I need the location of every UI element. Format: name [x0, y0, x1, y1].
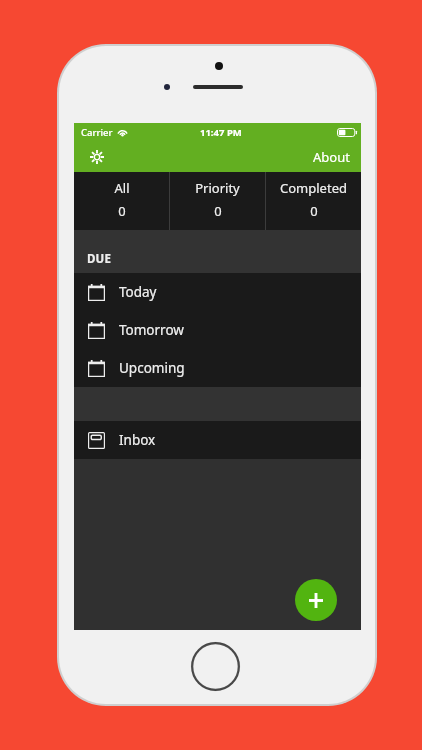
staticText: Priority — [195, 179, 240, 197]
button[interactable]: Priority — [170, 172, 265, 230]
button[interactable]: Inbox — [74, 421, 361, 459]
button[interactable]: Today — [74, 273, 361, 311]
staticText: 0 — [214, 202, 222, 220]
button[interactable]: About — [302, 142, 361, 172]
staticText: About — [313, 148, 350, 166]
button[interactable]: Add task — [295, 579, 337, 621]
button[interactable]: All — [74, 172, 169, 230]
staticText: Upcoming — [119, 359, 185, 377]
button[interactable]: Tomorrow — [74, 311, 361, 349]
staticText: Inbox — [119, 431, 156, 449]
button[interactable]: Settings — [74, 142, 119, 172]
staticText: Completed — [280, 179, 347, 197]
staticText: Today — [119, 283, 157, 301]
staticText: 0 — [118, 202, 126, 220]
staticText: Carrier — [81, 126, 113, 139]
staticText: 11:47 PM — [200, 126, 242, 139]
button[interactable]: Completed — [266, 172, 361, 230]
staticText: All — [114, 179, 130, 197]
staticText: Tomorrow — [119, 321, 184, 339]
button[interactable]: Upcoming — [74, 349, 361, 387]
staticText: 0 — [310, 202, 318, 220]
staticText: DUE — [87, 251, 112, 267]
